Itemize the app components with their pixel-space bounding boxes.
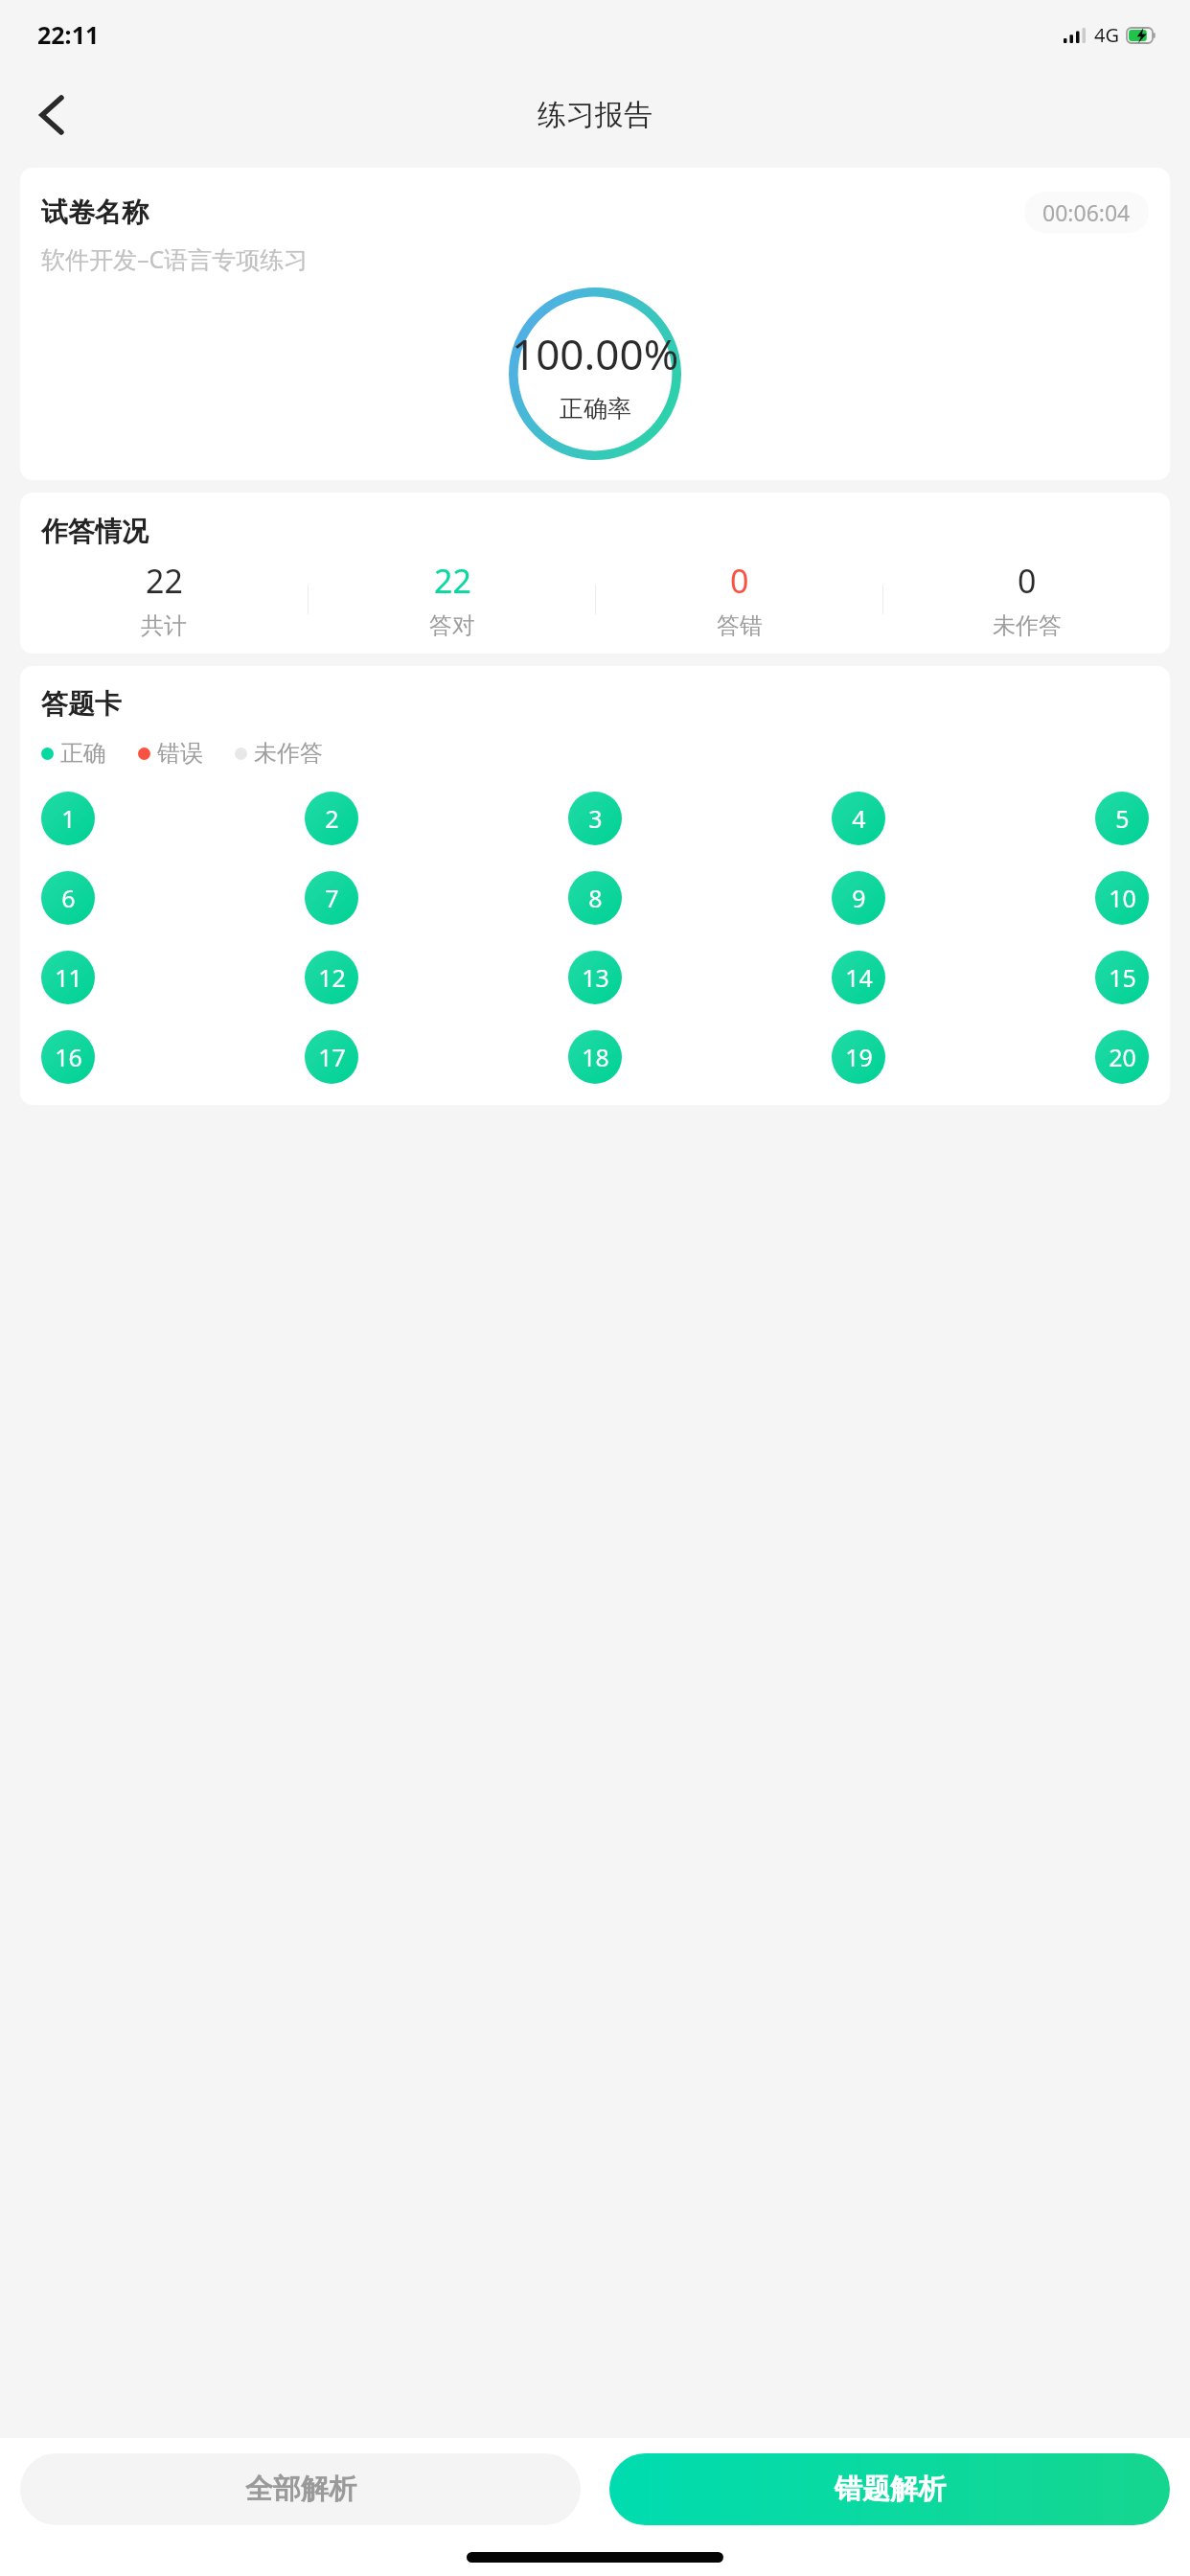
staticText: 22 bbox=[434, 559, 471, 603]
staticText: 答对 bbox=[429, 611, 475, 640]
button[interactable]: 13 bbox=[568, 951, 622, 1004]
staticText: 1 bbox=[61, 802, 76, 835]
button[interactable]: 2 bbox=[305, 792, 358, 845]
staticText: 9 bbox=[852, 882, 866, 914]
staticText: 22 bbox=[146, 559, 183, 603]
staticText: 14 bbox=[845, 961, 873, 994]
staticText: 0 bbox=[1018, 559, 1037, 603]
button[interactable]: 1 bbox=[41, 792, 95, 845]
staticText: 00:06:04 bbox=[1042, 197, 1131, 227]
staticText: 未作答 bbox=[254, 739, 323, 768]
staticText: 4G bbox=[1094, 22, 1119, 48]
button[interactable]: 错题解析 bbox=[609, 2453, 1170, 2525]
staticText: 0 bbox=[730, 559, 749, 603]
button[interactable]: 16 bbox=[41, 1030, 95, 1084]
staticText: 7 bbox=[325, 882, 339, 914]
button[interactable]: 3 bbox=[568, 792, 622, 845]
staticText: 4 bbox=[852, 802, 866, 835]
staticText: 18 bbox=[582, 1041, 609, 1073]
button[interactable]: 5 bbox=[1095, 792, 1149, 845]
button[interactable]: 12 bbox=[305, 951, 358, 1004]
button[interactable]: 15 bbox=[1095, 951, 1149, 1004]
staticText: 2 bbox=[325, 802, 339, 835]
button[interactable]: 17 bbox=[305, 1030, 358, 1084]
button[interactable]: 14 bbox=[832, 951, 885, 1004]
staticText: 错题解析 bbox=[835, 2472, 946, 2507]
staticText: 练习报告 bbox=[538, 97, 652, 133]
button[interactable]: 11 bbox=[41, 951, 95, 1004]
staticText: 12 bbox=[318, 961, 346, 994]
button[interactable]: Back bbox=[17, 80, 86, 149]
staticText: 5 bbox=[1115, 802, 1130, 835]
staticText: 17 bbox=[318, 1041, 346, 1073]
staticText: 全部解析 bbox=[245, 2472, 356, 2507]
staticText: 软件开发–C语言专项练习 bbox=[41, 242, 309, 275]
button[interactable]: 6 bbox=[41, 871, 95, 925]
staticText: 22:11 bbox=[37, 18, 100, 51]
staticText: 13 bbox=[582, 961, 609, 994]
staticText: 20 bbox=[1109, 1041, 1136, 1073]
button[interactable]: 8 bbox=[568, 871, 622, 925]
staticText: 10 bbox=[1109, 882, 1136, 914]
staticText: 正确率 bbox=[560, 394, 631, 424]
staticText: 答错 bbox=[717, 611, 763, 640]
staticText: 3 bbox=[588, 802, 603, 835]
staticText: 19 bbox=[845, 1041, 873, 1073]
staticText: 6 bbox=[61, 882, 76, 914]
button[interactable]: 19 bbox=[832, 1030, 885, 1084]
staticText: 答题卡 bbox=[41, 687, 122, 721]
staticText: 未作答 bbox=[993, 611, 1062, 640]
button[interactable]: 4 bbox=[832, 792, 885, 845]
button[interactable]: 7 bbox=[305, 871, 358, 925]
button[interactable]: 10 bbox=[1095, 871, 1149, 925]
staticText: 16 bbox=[55, 1041, 82, 1073]
button[interactable]: 9 bbox=[832, 871, 885, 925]
button[interactable]: 18 bbox=[568, 1030, 622, 1084]
button[interactable]: 20 bbox=[1095, 1030, 1149, 1084]
staticText: 11 bbox=[55, 961, 82, 994]
staticText: 8 bbox=[588, 882, 603, 914]
staticText: 正确 bbox=[60, 739, 106, 768]
staticText: 作答情况 bbox=[41, 515, 149, 548]
staticText: 共计 bbox=[141, 611, 187, 640]
staticText: 15 bbox=[1109, 961, 1136, 994]
staticText: 试卷名称 bbox=[41, 195, 149, 229]
staticText: 错误 bbox=[157, 739, 203, 768]
staticText: 100.00% bbox=[512, 325, 679, 382]
button[interactable]: 全部解析 bbox=[20, 2453, 581, 2525]
